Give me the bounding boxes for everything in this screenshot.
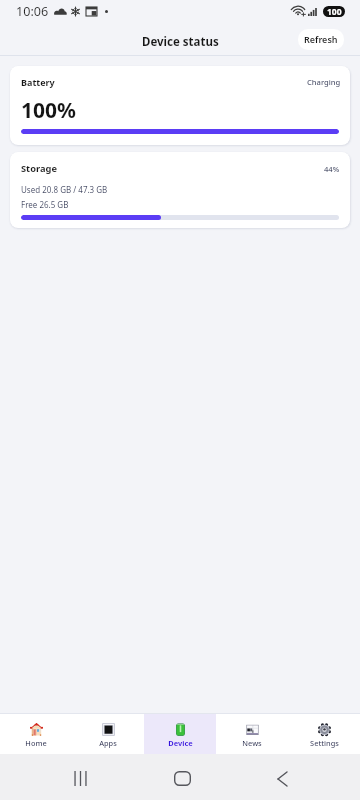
staticText: Apps <box>99 738 117 748</box>
button[interactable]: Device <box>144 714 216 754</box>
staticText: Storage <box>21 162 57 175</box>
staticText: 100% <box>21 96 76 125</box>
staticText: 44% <box>324 164 340 174</box>
staticText: Battery <box>21 76 55 88</box>
staticText: Charging <box>307 77 341 87</box>
staticText: Free 26.5 GB <box>21 199 69 210</box>
staticText: Settings <box>310 738 339 748</box>
button[interactable]: Apps <box>72 714 144 754</box>
button[interactable]: Storage <box>10 152 350 228</box>
button[interactable]: Recents <box>60 758 100 798</box>
staticText: 10:06 <box>16 3 49 20</box>
staticText: 100 <box>327 6 342 17</box>
staticText: Device <box>168 738 193 748</box>
button[interactable]: Home <box>0 714 72 754</box>
staticText: Used 20.8 GB / 47.3 GB <box>21 184 108 195</box>
button[interactable]: News <box>216 714 288 754</box>
button[interactable]: Home <box>162 758 202 798</box>
button[interactable]: Refresh <box>298 29 344 50</box>
staticText: Home <box>25 738 47 748</box>
button[interactable]: Battery <box>10 66 350 145</box>
staticText: Refresh <box>304 33 338 45</box>
button[interactable]: Back <box>262 759 302 799</box>
staticText: News <box>242 738 262 748</box>
staticText: Device status <box>142 34 219 50</box>
button[interactable]: Settings <box>288 714 360 754</box>
